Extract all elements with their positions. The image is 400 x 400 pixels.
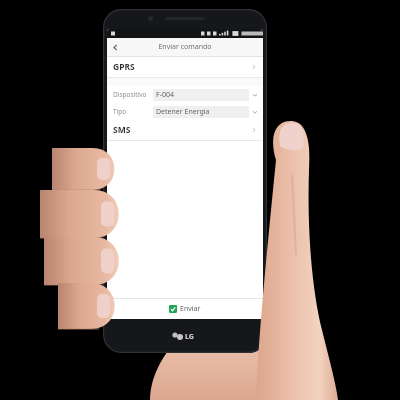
staticText: Enviar [180,304,201,314]
button[interactable]: Tipo [107,103,263,120]
staticText: LG [185,332,194,342]
staticText: Dispositivo [113,90,153,99]
button[interactable]: SMS [107,120,263,140]
button[interactable]: Enviar [165,302,205,316]
button[interactable]: Dispositivo [107,86,263,103]
button[interactable]: Back [107,39,123,55]
staticText: SMS [113,124,131,136]
button[interactable]: GPRS [107,57,263,77]
staticText: Tipo [113,107,153,116]
staticText: F-004 [156,90,174,100]
staticText: Enviar comando [158,42,212,52]
staticText: Detener Energia [156,107,210,117]
staticText: GPRS [113,61,135,73]
